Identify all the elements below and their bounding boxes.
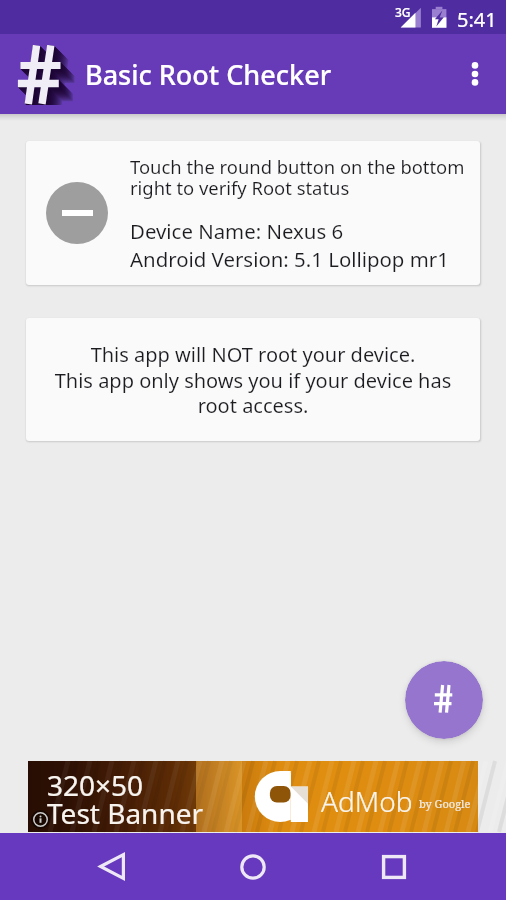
staticText: by Google — [419, 796, 471, 811]
staticText: Touch the round button on the bottom rig… — [130, 154, 466, 201]
staticText: AdMob — [321, 782, 413, 820]
staticText: Basic Root Checker — [85, 56, 332, 93]
button[interactable]: Advertisement — [28, 761, 478, 832]
staticText: 320×50 Test Banner — [47, 766, 204, 832]
button[interactable]: Touch the round button on the bottom rig… — [26, 141, 480, 285]
staticText: Device Name: Nexus 6 Android Version: 5.… — [130, 217, 449, 273]
button[interactable]: Recent apps — [338, 833, 450, 900]
button[interactable]: Home — [197, 833, 309, 900]
button[interactable]: Back — [56, 833, 168, 900]
button[interactable]: This app will NOT root your device. This… — [26, 318, 480, 441]
button[interactable]: Check root status — [405, 661, 483, 739]
staticText: 5:41 — [457, 6, 497, 33]
button[interactable]: More options — [451, 50, 499, 98]
staticText: This app will NOT root your device. This… — [26, 341, 480, 418]
staticText: 3G — [395, 4, 411, 20]
